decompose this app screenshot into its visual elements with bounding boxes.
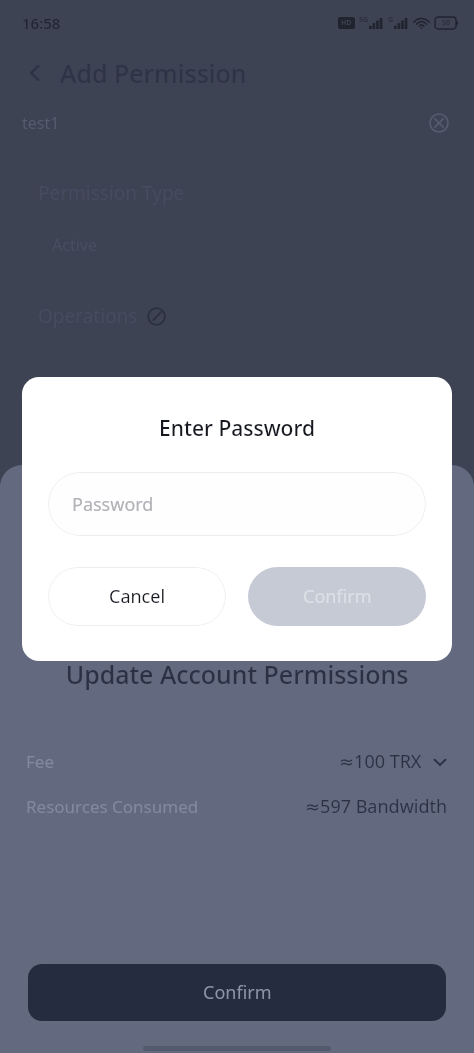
button[interactable]: Confirm — [248, 567, 426, 626]
staticText: Permission Type — [38, 180, 185, 206]
staticText: ≈100 TRX — [339, 749, 422, 774]
staticText: ≈597 Bandwidth — [305, 794, 448, 819]
button[interactable]: Cancel — [48, 567, 226, 626]
button[interactable]: Password — [48, 472, 426, 536]
staticText: Cancel — [109, 584, 166, 609]
staticText: Fee — [26, 750, 54, 773]
staticText: Active — [52, 234, 97, 256]
staticText: Update Account Permissions — [0, 657, 474, 691]
button[interactable]: Confirm — [28, 964, 446, 1021]
staticText: Password — [72, 492, 154, 517]
staticText: 16:58 — [22, 13, 61, 33]
staticText: test1 — [22, 112, 60, 134]
staticText: Add Permission — [60, 56, 247, 90]
staticText: HD — [341, 18, 352, 28]
staticText: 56 — [442, 18, 451, 28]
staticText: Operations — [38, 303, 138, 329]
staticText: G — [388, 15, 394, 25]
staticText: Resources Consumed — [26, 795, 199, 818]
staticText: 5G — [359, 15, 369, 25]
staticText: Confirm — [303, 584, 372, 609]
staticText: Confirm — [203, 980, 272, 1005]
staticText: Enter Password — [22, 414, 452, 443]
button[interactable]: Clear — [426, 110, 452, 136]
